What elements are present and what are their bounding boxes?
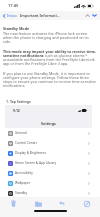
button[interactable]: Control Center [5, 138, 92, 148]
button[interactable]: Reply [51, 197, 73, 210]
staticText: 9:12 [13, 108, 20, 113]
button[interactable]: Display & Brightness [5, 148, 92, 158]
staticText: Settings [41, 121, 56, 126]
staticText: Standby [15, 191, 28, 195]
button[interactable]: Delete [2, 197, 24, 210]
button[interactable]: Accessibility [5, 168, 92, 178]
button[interactable]: Home Screen & App Library [5, 158, 92, 168]
staticText: Inbox [7, 13, 17, 18]
button[interactable]: Compose [76, 197, 98, 210]
staticText: Accessibility [15, 171, 33, 175]
button[interactable]: Wallpaper [5, 178, 92, 188]
staticText: 1. Tap Settings [6, 99, 31, 104]
staticText: Standby Mode [3, 26, 30, 31]
staticText: General [15, 131, 27, 135]
staticText: The new feature activates the iPhone loc… [3, 31, 97, 44]
staticText: Wallpaper [15, 181, 31, 185]
staticText: 17:45 [8, 3, 19, 8]
staticText: If you plan to use Standby Mode, it is i… [3, 71, 97, 88]
staticText: Control Center [15, 141, 37, 145]
staticText: This mode may impact your ability to rec… [3, 49, 97, 66]
staticText: Important Informati... [20, 13, 60, 18]
button[interactable]: Inbox [1, 12, 18, 19]
button[interactable]: Previous message [84, 11, 91, 20]
staticText: Display & Brightness [15, 151, 46, 155]
button[interactable]: Move to folder [27, 197, 49, 210]
button[interactable]: Standby [5, 188, 92, 198]
button[interactable]: General [5, 128, 92, 138]
staticText: Home Screen & App Library [15, 161, 57, 165]
button[interactable]: Next message [91, 11, 98, 20]
